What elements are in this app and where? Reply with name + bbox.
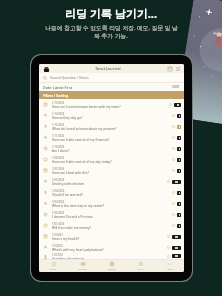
- button[interactable]: 1/11/2024: [39, 132, 184, 143]
- staticText: Avoiding old patterns: [52, 257, 85, 259]
- staticText: How is my health?: [52, 237, 80, 241]
- staticText: Will this make me money?: [52, 226, 91, 230]
- staticText: 1/03/2024: [52, 200, 65, 204]
- button[interactable]: Calendar: [166, 65, 173, 72]
- staticText: What's with my heart palpitations?: [52, 248, 104, 252]
- staticText: Am I alone?: [52, 149, 70, 153]
- button[interactable]: Spreads: [68, 260, 97, 272]
- staticText: I dreamt I kissed a Princess: [52, 215, 93, 219]
- staticText: Cards: [50, 267, 57, 270]
- button[interactable]: 12/28/23: [39, 242, 184, 253]
- staticText: Search Question / Notes: [50, 75, 89, 80]
- button[interactable]: Journal: [97, 260, 126, 272]
- staticText: 1/12/2024: [52, 123, 65, 127]
- button[interactable]: 1/02/2024: [39, 209, 184, 220]
- staticText: 12/27/23: [52, 253, 63, 257]
- staticText: 리딩 기록 남기기...: [65, 6, 157, 21]
- button[interactable]: 1/15/2024: [39, 99, 184, 110]
- staticText: Filters / Sorting: [43, 93, 68, 98]
- button[interactable]: 1/14/2024: [39, 110, 184, 121]
- button[interactable]: 1/05/2024: [39, 176, 184, 187]
- staticText: 짜 추가 가능.: [94, 32, 128, 40]
- staticText: Dealing with criticism: [52, 182, 85, 186]
- staticText: 1/04/2024: [52, 189, 65, 193]
- staticText: 1/02/2024: [52, 211, 65, 215]
- button[interactable]: Filters / Sorting: [39, 91, 184, 99]
- button[interactable]: Cards: [39, 260, 68, 272]
- staticText: 1/01/2024: [52, 222, 65, 226]
- button[interactable]: 1/01/2024: [39, 220, 184, 231]
- staticText: SORT: [172, 85, 180, 89]
- button[interactable]: 1/04/2024: [39, 187, 184, 198]
- staticText: How can I communicate better with my tea…: [52, 105, 121, 109]
- button[interactable]: 1/08/2024: [39, 154, 184, 165]
- staticText: Should I be worried?: [52, 193, 83, 197]
- staticText: How can I take control of my finances?: [52, 138, 110, 142]
- staticText: Learn: [137, 267, 144, 270]
- staticText: 1/15/2024: [52, 101, 65, 105]
- button[interactable]: More: [155, 260, 184, 272]
- button[interactable]: 1/12/2024: [39, 121, 184, 132]
- staticText: Spreads: [78, 267, 88, 270]
- staticText: How can I deal with this?: [52, 171, 89, 175]
- staticText: 1/08/2024: [52, 156, 65, 160]
- staticText: More: [167, 267, 173, 270]
- staticText: 나중에 참고할 수 있도록 리딩 저장. 메모, 질문 및 날: [45, 24, 178, 32]
- staticText: 12/28/23: [52, 244, 63, 248]
- staticText: Date: Latest First: [43, 85, 73, 90]
- button[interactable]: Learn: [126, 260, 155, 272]
- staticText: 1/05/2024: [52, 178, 65, 182]
- staticText: 1/14/2024: [52, 112, 65, 116]
- button[interactable]: 1/10/2024: [39, 143, 184, 154]
- staticText: How will my day go?: [52, 116, 83, 120]
- staticText: How can I take control of my day today?: [52, 160, 112, 164]
- staticText: 1/10/2024: [52, 145, 65, 149]
- button[interactable]: Menu: [174, 65, 181, 72]
- button[interactable]: Profile: [42, 65, 50, 73]
- staticText: Journal: [108, 267, 116, 270]
- staticText: What do I need to know about my present?: [52, 127, 117, 131]
- button[interactable]: SORT: [171, 84, 181, 90]
- staticText: 1/11/2024: [52, 134, 65, 138]
- button[interactable]: 1/03/2024: [39, 198, 184, 209]
- button[interactable]: 12/27/23: [39, 253, 184, 259]
- staticText: Tarot Journal: [95, 66, 121, 72]
- staticText: 12/30/23: [52, 233, 63, 237]
- staticText: 1/07/2024: [52, 167, 65, 171]
- button[interactable]: 1/07/2024: [39, 165, 184, 176]
- button[interactable]: Search Question / Notes: [39, 73, 184, 82]
- staticText: What is the next step in my career?: [52, 204, 105, 208]
- button[interactable]: 12/30/23: [39, 231, 184, 242]
